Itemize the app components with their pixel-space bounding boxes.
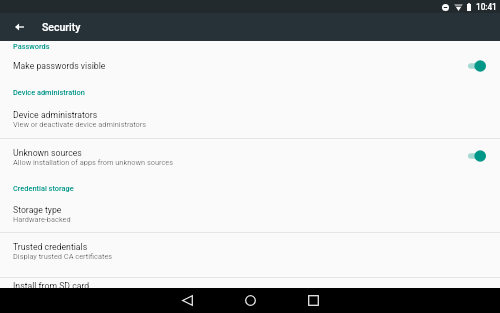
staticText: Storage type xyxy=(13,205,62,215)
button[interactable]: Install from SD card xyxy=(0,272,500,290)
staticText: View or deactivate device administrators xyxy=(13,120,147,129)
staticText: Unknown sources xyxy=(13,148,82,158)
staticText: Hardware-backed xyxy=(13,215,71,224)
staticText: Trusted credentials xyxy=(13,242,88,252)
button[interactable]: Toggle xyxy=(0,56,500,76)
button[interactable]: Trusted credentials xyxy=(0,233,500,251)
button[interactable]: Device administration xyxy=(13,88,85,97)
staticText: Security xyxy=(42,21,81,33)
staticText: Device administrators xyxy=(13,110,98,120)
staticText: 10:41 xyxy=(476,2,497,12)
button[interactable]: Toggle xyxy=(0,146,500,166)
button[interactable]: Storage type xyxy=(0,196,500,214)
button[interactable]: Back xyxy=(165,288,209,313)
button[interactable]: Unknown sources xyxy=(0,139,500,157)
staticText: Allow installation of apps from unknown … xyxy=(13,158,174,167)
button[interactable]: Credential storage xyxy=(13,184,74,193)
staticText: Passwords xyxy=(13,42,50,51)
button[interactable]: Passwords xyxy=(13,42,50,51)
staticText: Make passwords visible xyxy=(13,61,106,71)
staticText: Install from SD card xyxy=(13,281,90,291)
button[interactable]: Navigate up xyxy=(9,17,29,37)
button[interactable]: Recent apps xyxy=(291,288,335,313)
staticText: Display trusted CA certificates xyxy=(13,252,113,261)
button[interactable]: Device administrators xyxy=(0,101,500,119)
button[interactable]: Make passwords visible xyxy=(0,52,500,70)
button[interactable]: Home xyxy=(228,288,272,313)
staticText: Device administration xyxy=(13,88,85,97)
staticText: Credential storage xyxy=(13,184,74,193)
